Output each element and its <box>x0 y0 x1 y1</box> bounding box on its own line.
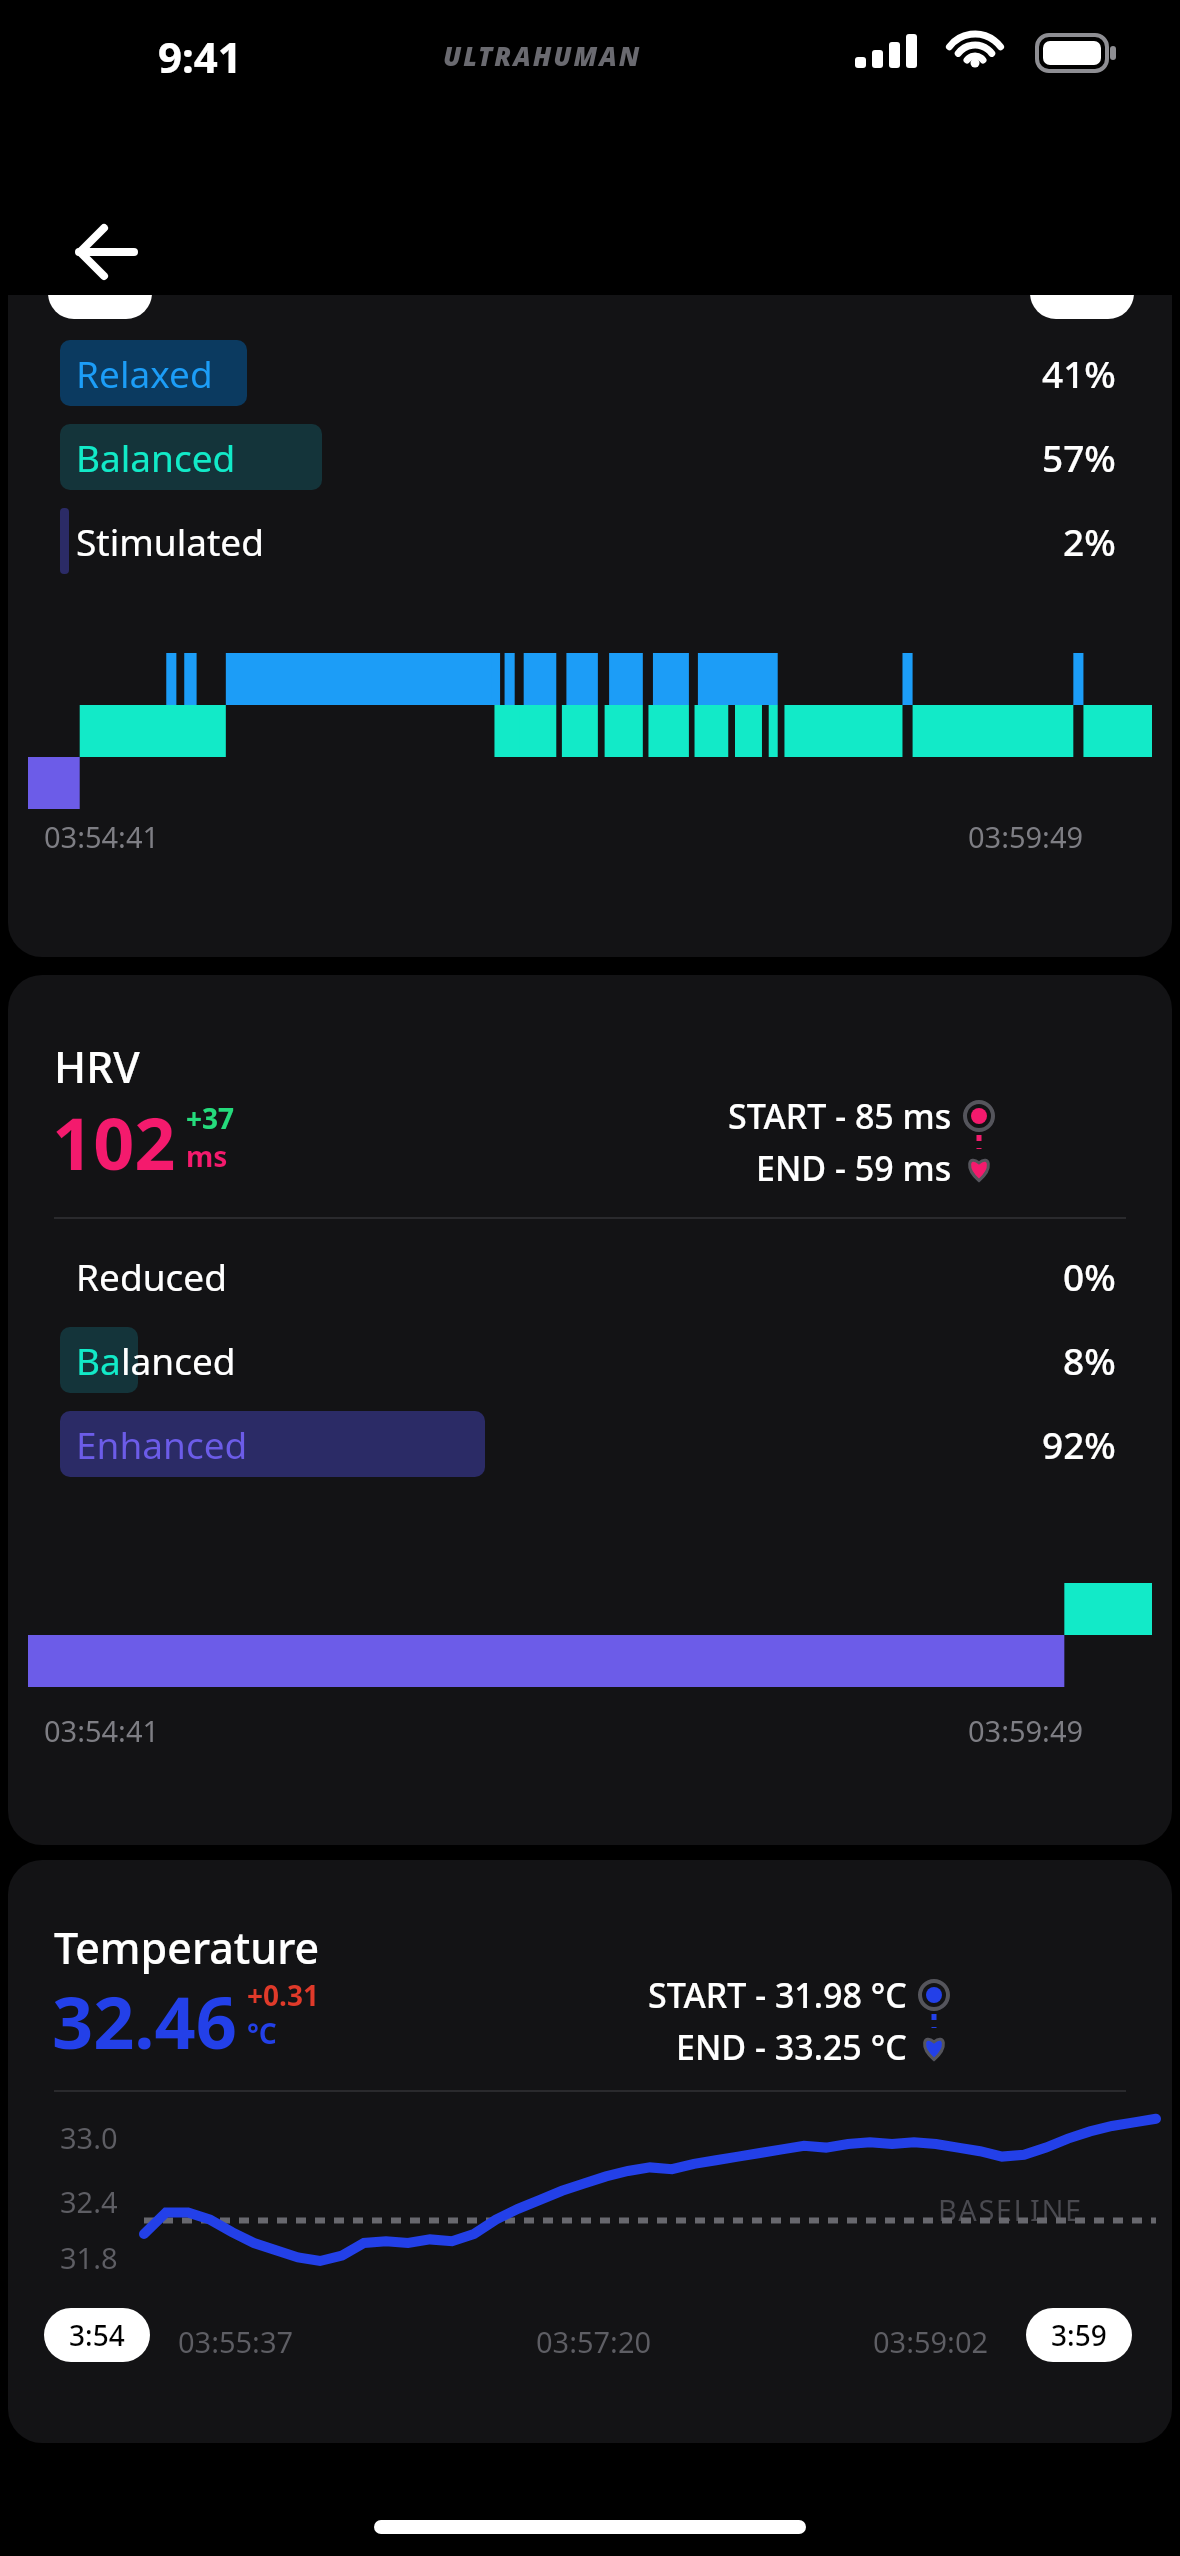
staticText: 92% <box>1042 1419 1116 1469</box>
staticText: 41% <box>1042 348 1116 398</box>
staticText: °C <box>247 2014 277 2052</box>
staticText: ULTRAHUMAN <box>443 38 642 73</box>
staticText: 31.8 <box>60 2238 118 2277</box>
staticText: HRV <box>54 1037 140 1096</box>
staticText: 57% <box>1042 432 1116 482</box>
staticText: 0% <box>1063 1251 1116 1301</box>
staticText: 03:59:49 <box>968 1711 1084 1750</box>
staticText: 32.4 <box>60 2182 118 2221</box>
button[interactable]: Back <box>56 202 156 302</box>
staticText: 3:59 <box>1051 2316 1107 2354</box>
staticText: Balanced <box>76 432 236 482</box>
staticText: Ba <box>76 1335 121 1385</box>
button[interactable]: Enhanced <box>8 1411 1172 1477</box>
staticText: Reduced <box>76 1251 227 1301</box>
staticText: lanced <box>121 1335 236 1385</box>
button[interactable]: Relaxed <box>8 340 1172 406</box>
staticText: 03:55:37 <box>178 2322 294 2361</box>
staticText: 33.0 <box>60 2118 118 2157</box>
button[interactable]: 3:59 <box>1026 2308 1132 2362</box>
button[interactable]: START - 31.98 °C <box>648 1972 949 2070</box>
staticText: Enhanced <box>76 1419 248 1469</box>
staticText: 03:54:41 <box>44 1711 160 1750</box>
staticText: +37 <box>186 1099 235 1137</box>
staticText: 32.46 <box>52 1972 237 2070</box>
button[interactable]: Temperature <box>8 1860 1172 2443</box>
button[interactable]: Ba <box>8 1327 1172 1393</box>
staticText: END - 33.25 °C <box>676 2024 907 2070</box>
staticText: ms <box>186 1137 228 1175</box>
staticText: 102 <box>52 1093 176 1191</box>
staticText: BASELINE <box>938 2190 1083 2229</box>
button[interactable]: Stimulated <box>8 508 1172 574</box>
staticText: Stimulated <box>76 516 264 566</box>
staticText: 03:54:41 <box>44 817 160 856</box>
button[interactable]: Reduced <box>8 1243 1172 1309</box>
staticText: START - 85 ms <box>728 1093 952 1139</box>
staticText: 03:59:02 <box>873 2322 989 2361</box>
staticText: 3:54 <box>69 2316 125 2354</box>
button[interactable]: Relaxed <box>8 295 1172 957</box>
staticText: +0.31 <box>247 1976 319 2014</box>
button[interactable]: 3:54 <box>44 2308 150 2362</box>
button[interactable]: HRV <box>8 975 1172 1845</box>
staticText: 2% <box>1063 516 1116 566</box>
button[interactable]: Balanced <box>8 424 1172 490</box>
staticText: 03:57:20 <box>536 2322 652 2361</box>
staticText: 9:41 <box>158 28 242 85</box>
staticText: Temperature <box>54 1918 320 1977</box>
staticText: 8% <box>1063 1335 1116 1385</box>
staticText: 03:59:49 <box>968 817 1084 856</box>
button[interactable]: START - 85 ms <box>728 1093 994 1191</box>
staticText: END - 59 ms <box>756 1145 952 1191</box>
staticText: START - 31.98 °C <box>648 1972 907 2018</box>
staticText: Relaxed <box>76 348 213 398</box>
